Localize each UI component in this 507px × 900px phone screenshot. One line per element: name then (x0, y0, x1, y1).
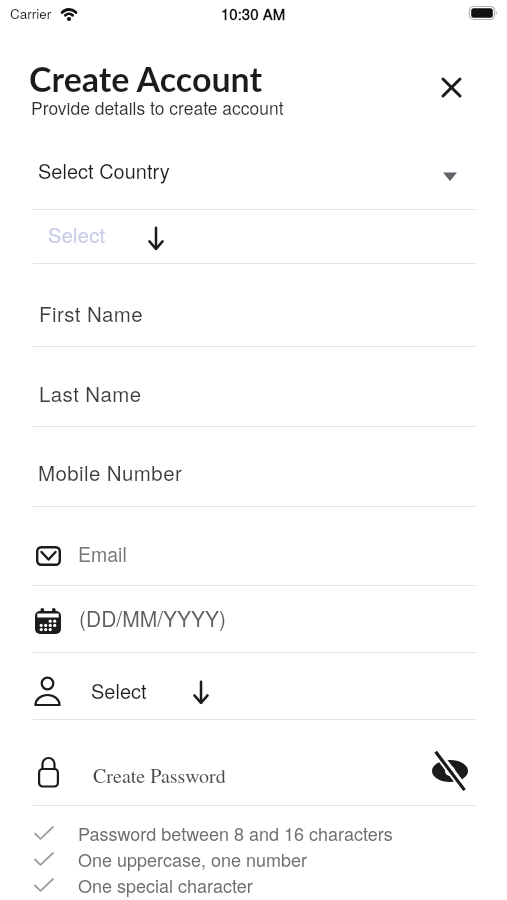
staticText: Provide details to create account (31, 95, 284, 120)
staticText: Last Name (39, 378, 142, 407)
staticText: First Name (39, 298, 144, 327)
button[interactable]: First Name (33, 265, 476, 347)
staticText: (DD/MM/YYYY) (79, 603, 226, 633)
button[interactable]: Select (33, 654, 476, 720)
staticText: Create Password (93, 762, 226, 789)
button[interactable]: (DD/MM/YYYY) (33, 587, 476, 653)
button[interactable] (427, 749, 473, 793)
staticText: Select (48, 220, 106, 249)
staticText: Password between 8 and 16 characters (78, 820, 393, 846)
button[interactable]: Select (33, 211, 476, 264)
button[interactable]: Last Name (33, 348, 476, 427)
staticText: 10:30 AM (221, 3, 286, 24)
staticText: Select (91, 676, 147, 705)
button[interactable]: Create Password (33, 721, 476, 806)
staticText: Mobile Number (38, 457, 183, 486)
staticText: Select Country (38, 156, 170, 185)
staticText: One uppercase, one number (78, 846, 308, 872)
staticText: One special character (78, 872, 253, 898)
button[interactable]: Mobile Number (33, 428, 476, 507)
staticText: Create Account (29, 58, 263, 99)
staticText: Email (78, 540, 127, 568)
staticText: Carrier (10, 4, 52, 23)
button[interactable]: Select Country (33, 140, 476, 210)
button[interactable] (428, 64, 474, 110)
button[interactable]: Email (33, 508, 476, 586)
